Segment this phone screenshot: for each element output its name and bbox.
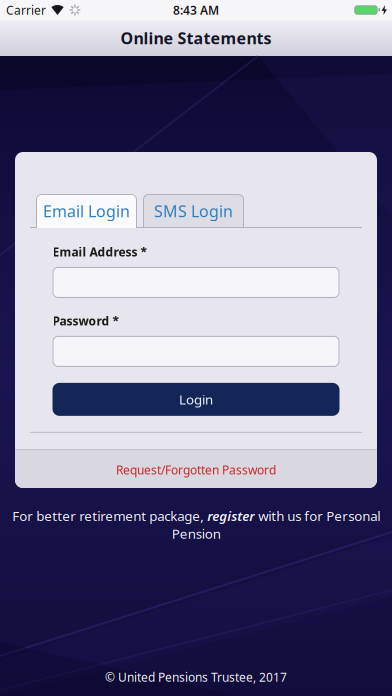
button[interactable]: Login [52, 383, 339, 416]
staticText: SMS Login [154, 200, 233, 222]
button[interactable]: SMS Login [143, 194, 244, 228]
staticText: Password * [52, 313, 119, 329]
staticText: Email Login [43, 200, 130, 222]
staticText: © United Pensions Trustee, 2017 [105, 669, 287, 685]
staticText: Login [179, 390, 213, 408]
button[interactable]: Request/Forgotten Password [15, 449, 377, 488]
staticText: Email Address * [52, 244, 147, 260]
staticText: 8:43 AM [173, 2, 219, 18]
staticText: For better retirement package, register … [12, 507, 380, 542]
staticText: Online Statements [120, 27, 271, 49]
staticText: Carrier [6, 2, 46, 18]
button[interactable]: Email Login [36, 194, 137, 228]
staticText: Request/Forgotten Password [116, 462, 276, 478]
